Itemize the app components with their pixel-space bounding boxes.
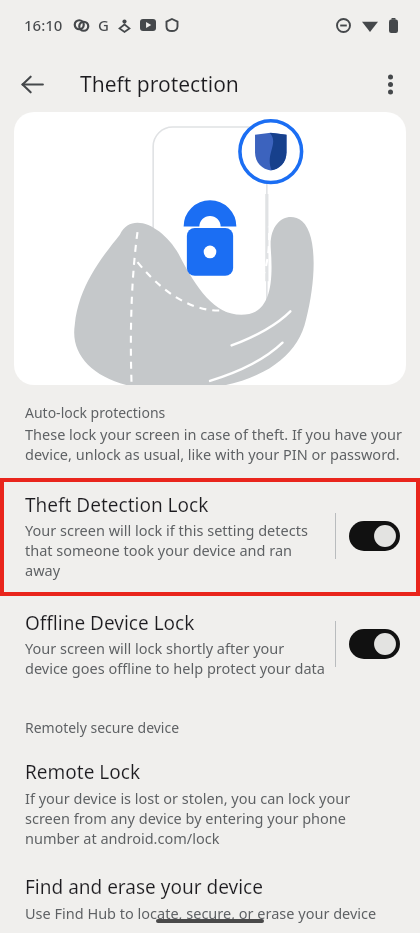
button[interactable]: Back xyxy=(8,60,56,108)
staticText: Remote Lock xyxy=(25,759,141,785)
staticText: Offline Device Lock xyxy=(25,610,195,636)
staticText: Theft Detection Lock xyxy=(25,492,209,518)
staticText: G xyxy=(98,15,109,35)
button[interactable]: Remote Lock xyxy=(0,759,420,848)
button[interactable]: Find and erase your device xyxy=(0,874,420,923)
staticText: If your device is lost or stolen, you ca… xyxy=(25,788,398,848)
button[interactable]: Offline Device Lock xyxy=(0,596,420,692)
staticText: Find and erase your device xyxy=(25,874,263,900)
staticText: Your screen will lock shortly after your… xyxy=(25,638,327,678)
staticText: These lock your screen in case of theft.… xyxy=(25,424,402,465)
staticText: Remotely secure device xyxy=(25,718,180,737)
button[interactable]: More options xyxy=(366,60,414,108)
staticText: Auto-lock protections xyxy=(25,403,166,422)
staticText: 16:10 xyxy=(24,15,63,35)
button[interactable]: Theft Detection Lock xyxy=(4,482,416,592)
staticText: Use Find Hub to locate, secure, or erase… xyxy=(25,903,377,923)
staticText: Theft protection xyxy=(80,70,239,99)
staticText: Your screen will lock if this setting de… xyxy=(25,520,327,580)
